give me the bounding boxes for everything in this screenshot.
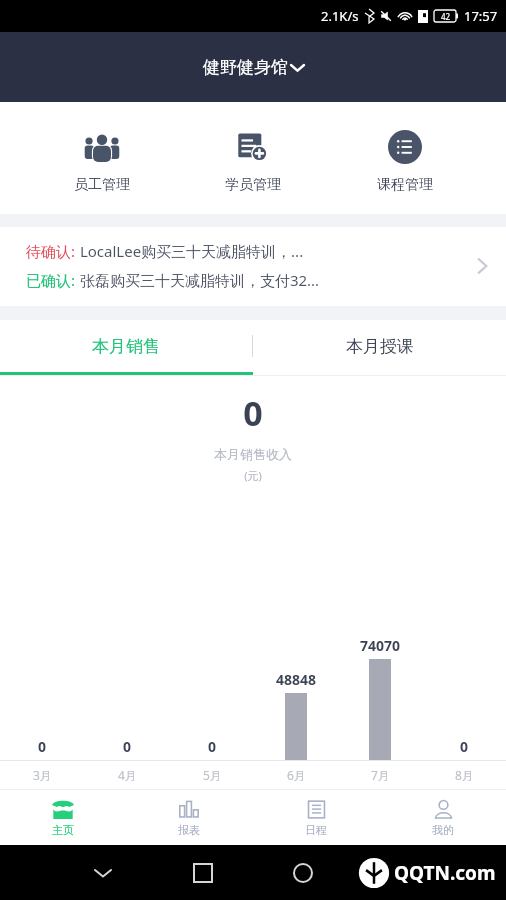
staticText: 张磊购买三十天减脂特训，支付32... — [76, 270, 320, 290]
staticText: 0 — [38, 737, 47, 756]
staticText: 42 — [441, 11, 451, 22]
staticText: QQTN.com — [394, 860, 496, 886]
button[interactable]: Home — [286, 856, 320, 890]
staticText: 学员管理 — [225, 176, 281, 194]
staticText: 我的 — [432, 823, 454, 837]
button[interactable]: 健野健身馆 — [197, 51, 310, 84]
button[interactable]: 学员管理 — [203, 126, 303, 196]
button[interactable]: 本月授课 — [253, 320, 506, 372]
button[interactable]: 课程管理 — [355, 126, 455, 196]
staticText: 本月销售 — [92, 336, 160, 357]
staticText: 8月 — [455, 767, 474, 783]
button[interactable]: 报表 — [126, 790, 252, 845]
staticText: 0 — [0, 390, 506, 436]
button[interactable]: 我的 — [379, 790, 506, 845]
staticText: 员工管理 — [74, 176, 130, 194]
staticText: 0 — [208, 737, 217, 756]
staticText: 7月 — [371, 767, 390, 783]
staticText: (元) — [0, 468, 506, 483]
staticText: 3月 — [33, 767, 52, 783]
staticText: 待确认: — [26, 241, 76, 261]
other: More — [477, 257, 488, 275]
staticText: 主页 — [52, 823, 74, 837]
staticText: 5月 — [203, 767, 222, 783]
staticText: 日程 — [305, 823, 327, 837]
staticText: 课程管理 — [377, 176, 433, 194]
staticText: 本月销售收入 — [0, 446, 506, 462]
staticText: 2.1K/s — [321, 7, 359, 25]
button[interactable]: 待确认: — [0, 227, 506, 306]
button[interactable]: 日程 — [252, 790, 379, 845]
staticText: 0 — [123, 737, 132, 756]
staticText: 报表 — [178, 823, 200, 837]
button[interactable]: 主页 — [0, 790, 126, 845]
button[interactable]: Back — [86, 856, 120, 890]
button[interactable]: 本月销售 — [0, 320, 252, 372]
staticText: 健野健身馆 — [203, 57, 288, 78]
staticText: 74070 — [360, 636, 401, 655]
staticText: LocalLee购买三十天减脂特训，... — [76, 241, 304, 261]
staticText: 已确认: — [26, 270, 76, 290]
staticText: 4月 — [118, 767, 137, 783]
staticText: 本月授课 — [346, 336, 414, 357]
staticText: 48848 — [276, 670, 317, 689]
staticText: 6月 — [287, 767, 306, 783]
button[interactable]: 员工管理 — [52, 126, 152, 196]
staticText: 0 — [460, 737, 469, 756]
staticText: 17:57 — [464, 7, 498, 25]
button[interactable]: Recents — [186, 856, 220, 890]
